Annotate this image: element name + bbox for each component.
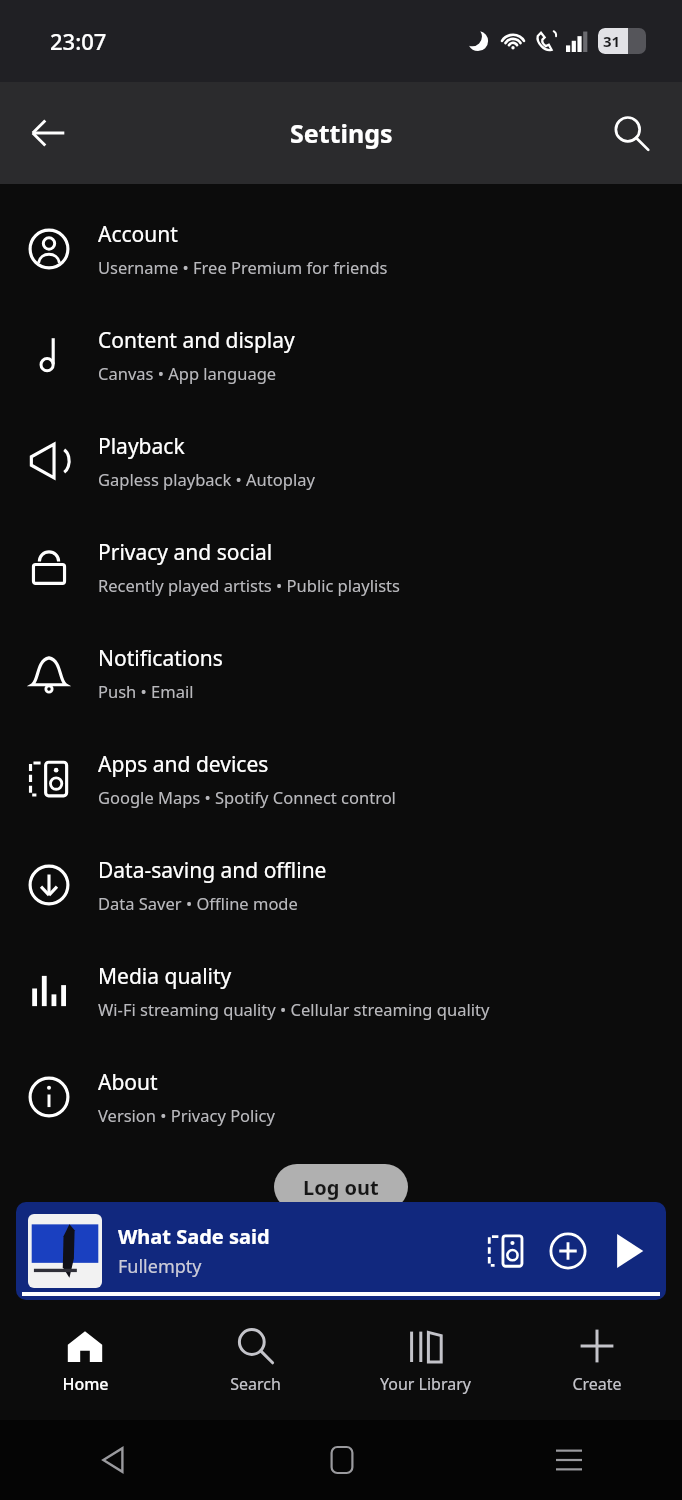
button[interactable]: Apps and devices <box>0 726 682 832</box>
button[interactable]: What Sade said <box>16 1202 666 1300</box>
button[interactable]: Back <box>87 1433 141 1487</box>
staticText: Your Library <box>380 1373 471 1395</box>
button[interactable]: Search <box>600 102 662 164</box>
staticText: Recently played artists • Public playlis… <box>98 574 400 596</box>
staticText: Content and display <box>98 326 295 355</box>
staticText: Home <box>62 1373 109 1395</box>
button[interactable]: Content and display <box>0 302 682 408</box>
staticText: 23:07 <box>50 26 107 56</box>
staticText: Apps and devices <box>98 750 269 779</box>
staticText: Data-saving and offline <box>98 856 327 885</box>
staticText: Fullempty <box>118 1254 202 1279</box>
staticText: Gapless playback • Autoplay <box>98 468 315 490</box>
button[interactable]: Media quality <box>0 938 682 1044</box>
staticText: Push • Email <box>98 680 194 702</box>
staticText: About <box>98 1068 158 1097</box>
button[interactable]: Home <box>315 1433 369 1487</box>
staticText: Google Maps • Spotify Connect control <box>98 786 396 808</box>
button[interactable]: Log out <box>274 1164 408 1210</box>
button[interactable]: Recent apps <box>542 1433 596 1487</box>
button[interactable]: Privacy and social <box>0 514 682 620</box>
button[interactable]: Data-saving and offline <box>0 832 682 938</box>
staticText: Settings <box>290 116 393 150</box>
button[interactable]: Account <box>0 196 682 302</box>
button[interactable]: Connect to a device <box>480 1225 532 1277</box>
staticText: Wi-Fi streaming quality • Cellular strea… <box>98 998 490 1020</box>
staticText: Privacy and social <box>98 538 273 567</box>
staticText: What Sade said <box>118 1223 270 1250</box>
staticText: 31 <box>603 31 621 51</box>
button[interactable]: Play <box>602 1225 654 1277</box>
staticText: Log out <box>303 1174 379 1201</box>
button[interactable]: About <box>0 1044 682 1150</box>
button[interactable]: Notifications <box>0 620 682 726</box>
staticText: Canvas • App language <box>98 362 277 384</box>
staticText: Username • Free Premium for friends <box>98 256 388 278</box>
button[interactable]: Playback <box>0 408 682 514</box>
staticText: Playback <box>98 432 185 461</box>
button[interactable]: Create <box>511 1300 682 1420</box>
button[interactable]: Back <box>16 101 80 165</box>
button[interactable]: Search <box>170 1300 340 1420</box>
button[interactable]: Your Library <box>340 1300 511 1420</box>
staticText: Data Saver • Offline mode <box>98 892 298 914</box>
button[interactable]: Add to playlist <box>542 1225 594 1277</box>
staticText: Account <box>98 220 178 249</box>
button[interactable]: Home <box>0 1300 170 1420</box>
staticText: Media quality <box>98 962 232 991</box>
staticText: Version • Privacy Policy <box>98 1104 275 1126</box>
staticText: Search <box>230 1373 281 1395</box>
staticText: Notifications <box>98 644 223 673</box>
staticText: Create <box>572 1373 622 1395</box>
